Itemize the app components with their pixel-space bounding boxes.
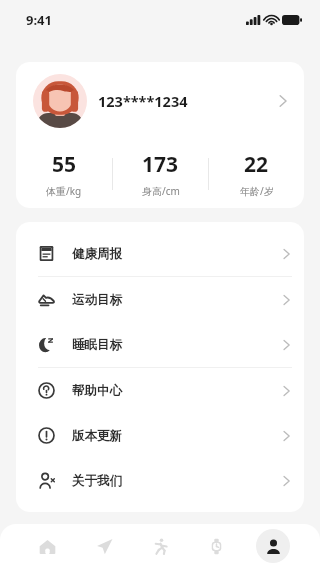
- staticText: 9:41: [26, 11, 52, 29]
- staticText: 173: [142, 150, 179, 179]
- button[interactable]: 55: [16, 150, 112, 198]
- staticText: 22: [244, 150, 269, 179]
- staticText: 体重/kg: [46, 184, 82, 198]
- button[interactable]: 版本更新: [16, 413, 304, 458]
- button[interactable]: 健康周报: [16, 231, 304, 276]
- staticText: 身高/cm: [142, 184, 180, 198]
- button[interactable]: Home: [30, 529, 64, 563]
- button[interactable]: 睡眠目标: [16, 322, 304, 367]
- button[interactable]: Messages: [87, 529, 121, 563]
- staticText: 睡眠目标: [72, 337, 122, 353]
- staticText: 55: [52, 150, 77, 179]
- button[interactable]: Activity: [143, 529, 177, 563]
- staticText: 版本更新: [72, 428, 122, 444]
- button[interactable]: Profile: [256, 529, 290, 563]
- staticText: 健康周报: [72, 246, 122, 262]
- button[interactable]: 运动目标: [16, 277, 304, 322]
- button[interactable]: 123****1234: [16, 62, 304, 139]
- staticText: 帮助中心: [72, 383, 122, 399]
- button[interactable]: 关于我们: [16, 458, 304, 503]
- button[interactable]: Device: [199, 529, 233, 563]
- staticText: 123****1234: [98, 91, 188, 111]
- button[interactable]: 173: [113, 150, 208, 198]
- staticText: 运动目标: [72, 292, 122, 308]
- staticText: 年龄/岁: [240, 184, 274, 198]
- staticText: 关于我们: [72, 473, 122, 489]
- button[interactable]: 帮助中心: [16, 368, 304, 413]
- button[interactable]: 22: [209, 150, 304, 198]
